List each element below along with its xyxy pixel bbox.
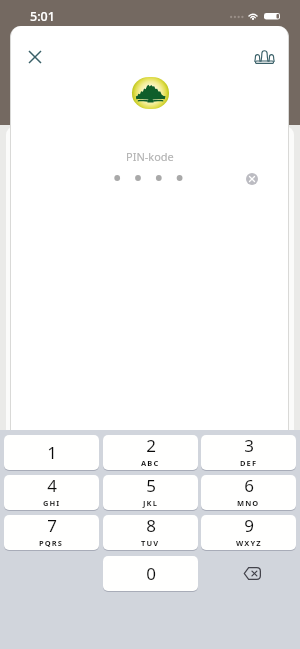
button[interactable]: 3 bbox=[201, 435, 296, 470]
button[interactable]: 5 bbox=[103, 475, 198, 510]
staticText: DEF bbox=[240, 458, 258, 468]
button[interactable]: 0 bbox=[103, 556, 198, 591]
staticText: 7 bbox=[47, 515, 57, 537]
button[interactable]: 7 bbox=[4, 515, 99, 550]
button[interactable]: 2 bbox=[103, 435, 198, 470]
staticText: 5:01 bbox=[30, 8, 55, 25]
button[interactable]: Users bbox=[249, 42, 280, 71]
button[interactable]: 4 bbox=[4, 475, 99, 510]
button[interactable]: 6 bbox=[201, 475, 296, 510]
button[interactable]: Backspace bbox=[227, 556, 276, 591]
staticText: 5 bbox=[146, 475, 156, 497]
button[interactable]: 1 bbox=[4, 435, 99, 470]
staticText: GHI bbox=[43, 498, 61, 508]
button[interactable]: 9 bbox=[201, 515, 296, 550]
staticText: MNO bbox=[237, 498, 260, 508]
staticText: 2 bbox=[146, 435, 156, 457]
staticText: WXYZ bbox=[236, 538, 262, 548]
staticText: 1 bbox=[47, 441, 57, 464]
button[interactable]: Clear bbox=[239, 166, 264, 191]
staticText: 3 bbox=[244, 435, 254, 457]
staticText: PQRS bbox=[39, 538, 64, 548]
staticText: ABC bbox=[141, 458, 160, 468]
staticText: 8 bbox=[146, 515, 156, 537]
staticText: TUV bbox=[141, 538, 160, 548]
button[interactable]: 8 bbox=[103, 515, 198, 550]
staticText: 9 bbox=[244, 515, 254, 537]
staticText: PIN-kode bbox=[126, 149, 174, 164]
staticText: 4 bbox=[47, 475, 57, 497]
staticText: 6 bbox=[244, 475, 254, 497]
staticText: JKL bbox=[143, 498, 158, 508]
staticText: 0 bbox=[146, 562, 156, 585]
button[interactable]: Close bbox=[20, 42, 50, 72]
